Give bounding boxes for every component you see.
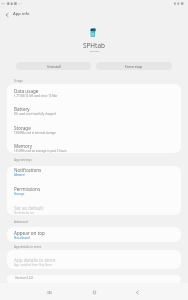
- button[interactable]: Uninstall: [16, 62, 91, 70]
- staticText: Appear on top: [14, 230, 45, 236]
- button[interactable]: Home: [85, 286, 103, 298]
- staticText: Storage: [14, 125, 31, 131]
- button[interactable]: Notifications: [7, 165, 181, 183]
- staticText: No defaults set: [14, 211, 34, 215]
- staticText: App details in store: [14, 257, 56, 263]
- staticText: 135 MB used on average in past 3 hours: [14, 149, 67, 153]
- staticText: Notifications: [14, 167, 42, 173]
- staticText: SPHtab: [83, 41, 105, 50]
- staticText: App info: [13, 11, 30, 17]
- staticText: App details in store: [14, 245, 42, 249]
- staticText: Advanced: [14, 220, 28, 224]
- staticText: Memory: [14, 143, 33, 149]
- staticText: Battery: [14, 106, 30, 112]
- staticText: Version 3.2.0: [15, 276, 34, 280]
- button[interactable]: Data usage: [7, 86, 181, 104]
- staticText: 6% used since last fully charged: [14, 112, 56, 116]
- button[interactable]: App details in store: [7, 255, 181, 273]
- staticText: Data usage: [14, 88, 39, 94]
- staticText: Force stop: [125, 64, 143, 69]
- staticText: App installed from Play Store: [14, 263, 52, 267]
- button[interactable]: Storage: [7, 123, 181, 141]
- staticText: Not allowed: [14, 236, 30, 240]
- staticText: Usage: [14, 79, 23, 83]
- staticText: Allowed: [14, 173, 25, 177]
- staticText: Installed: [90, 50, 99, 53]
- button[interactable]: Permissions: [7, 184, 181, 202]
- button[interactable]: Battery: [7, 104, 181, 122]
- staticText: Storage: [14, 192, 25, 196]
- button[interactable]: Recent apps: [40, 286, 58, 298]
- button[interactable]: Force stop: [96, 62, 172, 70]
- button[interactable]: Set as default: [7, 203, 181, 221]
- staticText: 1.77 GB/14 GB used since 13 Mar: [14, 94, 58, 98]
- button[interactable]: Appear on top: [7, 228, 181, 246]
- button[interactable]: Memory: [7, 141, 181, 159]
- staticText: 138 MB used in internal storage: [14, 131, 56, 135]
- staticText: App settings: [14, 158, 32, 162]
- staticText: Uninstall: [47, 64, 61, 68]
- button[interactable]: Back: [2, 9, 12, 20]
- staticText: Permissions: [14, 186, 41, 192]
- button[interactable]: Back: [128, 286, 146, 298]
- staticText: Set as default: [14, 205, 44, 211]
